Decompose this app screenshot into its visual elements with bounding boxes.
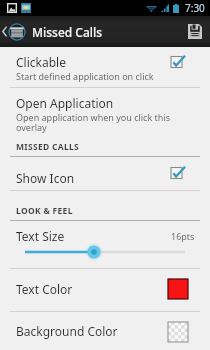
button[interactable]: Text Size xyxy=(0,221,210,268)
button[interactable]: Text Color xyxy=(0,269,210,311)
button[interactable]: Clickable xyxy=(0,47,210,87)
button[interactable]: Save xyxy=(180,16,210,47)
staticText: Text Color xyxy=(16,281,73,297)
other: Navigate up xyxy=(2,26,7,37)
staticText: Show Icon xyxy=(16,170,75,186)
staticText: Clickable xyxy=(16,54,66,70)
button[interactable]: Background Color xyxy=(0,312,210,350)
staticText: Start defined application on click xyxy=(16,70,154,82)
staticText: MISSED CALLS xyxy=(16,141,80,153)
button[interactable]: Show Icon xyxy=(0,157,210,191)
staticText: Text Size xyxy=(16,228,65,244)
staticText: Background Color xyxy=(16,323,118,339)
staticText: Open application when you click this ove… xyxy=(16,111,172,133)
staticText: 16pts xyxy=(171,230,195,242)
button[interactable]: Navigate up xyxy=(0,16,180,47)
staticText: 7:30 xyxy=(185,1,205,15)
button[interactable]: Open Application xyxy=(0,88,210,137)
staticText: LOOK & FEEL xyxy=(16,205,73,217)
staticText: Missed Calls xyxy=(32,24,103,40)
staticText: Open Application xyxy=(16,95,114,111)
